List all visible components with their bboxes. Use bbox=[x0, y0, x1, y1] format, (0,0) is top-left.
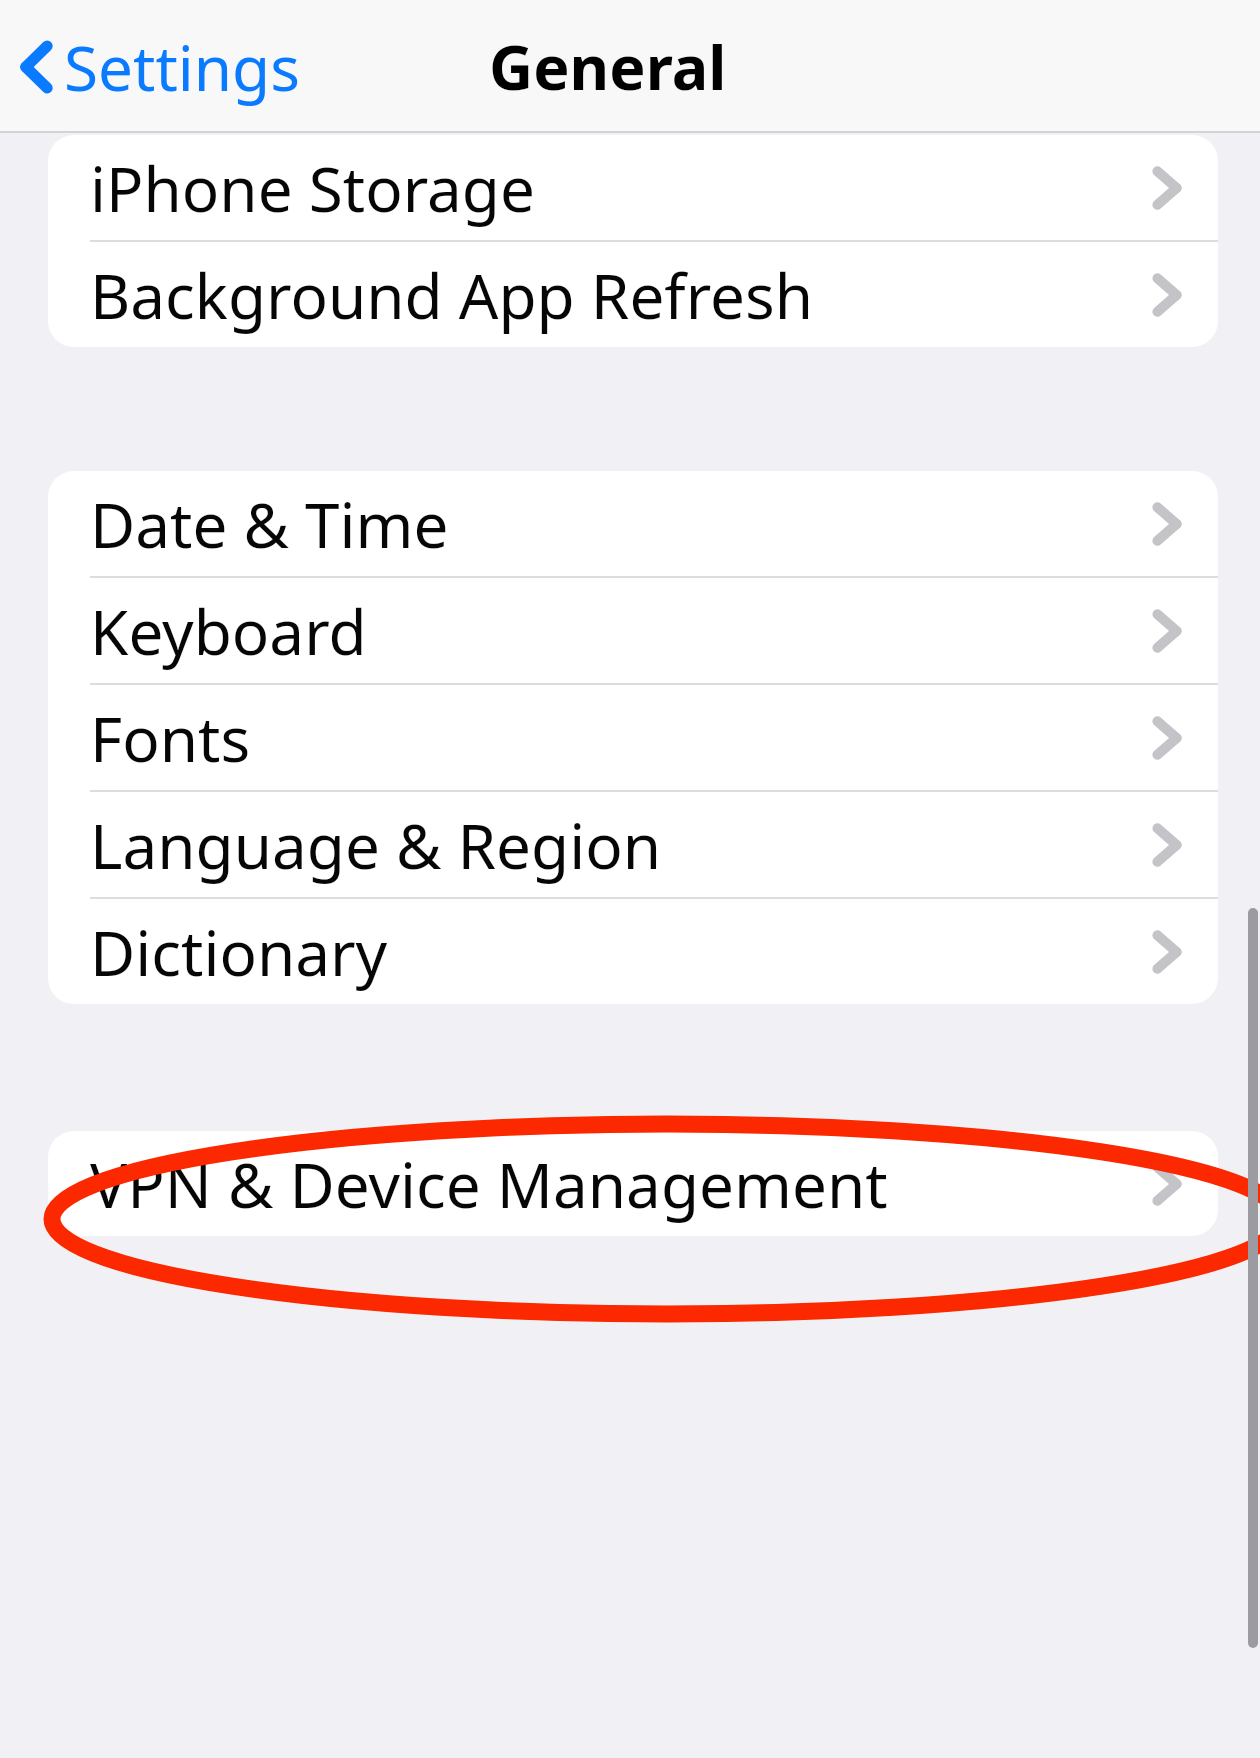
staticText: Date & Time bbox=[90, 482, 449, 566]
staticText: VPN & Device Management bbox=[90, 1142, 888, 1226]
staticText: Keyboard bbox=[90, 589, 367, 673]
staticText: General bbox=[489, 25, 727, 108]
button[interactable]: Background App Refresh bbox=[48, 242, 1218, 347]
button[interactable]: Language & Region bbox=[48, 792, 1218, 897]
button[interactable]: Date & Time bbox=[48, 471, 1218, 576]
button[interactable]: VPN & Device Management bbox=[48, 1131, 1218, 1236]
staticText: iPhone Storage bbox=[90, 146, 535, 230]
staticText: Settings bbox=[64, 25, 300, 109]
button[interactable]: iPhone Storage bbox=[48, 135, 1218, 240]
button[interactable]: Keyboard bbox=[48, 578, 1218, 683]
other: Back bbox=[20, 42, 52, 92]
staticText: Language & Region bbox=[90, 803, 662, 887]
staticText: Dictionary bbox=[90, 910, 388, 994]
button[interactable]: Fonts bbox=[48, 685, 1218, 790]
staticText: Background App Refresh bbox=[90, 253, 814, 337]
button[interactable]: Dictionary bbox=[48, 899, 1218, 1004]
button[interactable]: Back bbox=[12, 15, 308, 119]
staticText: Fonts bbox=[90, 696, 251, 780]
